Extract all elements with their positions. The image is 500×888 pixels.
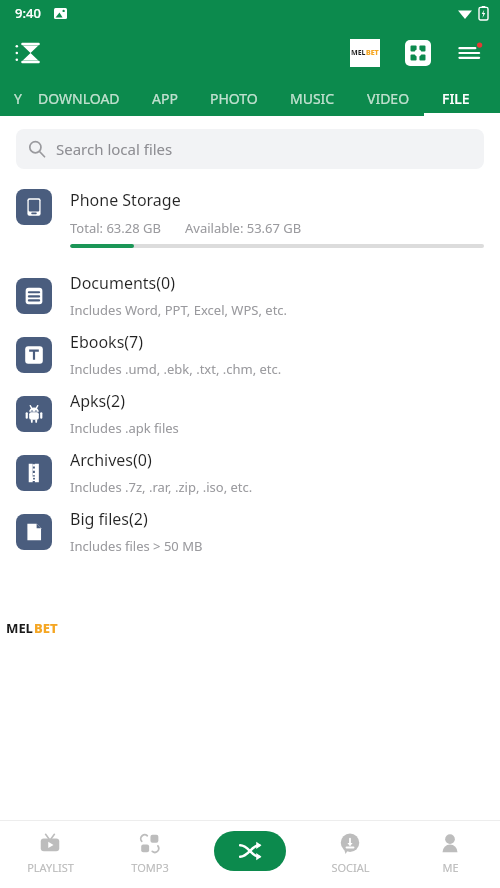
staticText: PHOTO — [210, 89, 258, 108]
button[interactable]: Apks(2) — [0, 384, 500, 443]
button[interactable]: Transfer files — [214, 831, 286, 871]
staticText: MUSIC — [290, 89, 335, 108]
staticText: Includes files > 50 MB — [70, 537, 203, 555]
button[interactable]: DOWNLOAD — [22, 80, 136, 116]
button[interactable]: Phone Storage — [0, 187, 500, 250]
staticText: Ebooks(7) — [70, 331, 144, 353]
button[interactable]: Documents(0) — [0, 266, 500, 325]
staticText: APP — [152, 89, 178, 108]
staticText: VIDEO — [367, 89, 410, 108]
button[interactable]: Transfer — [398, 33, 438, 73]
button[interactable]: Melbet banner — [6, 619, 58, 637]
staticText: Total: 63.28 GB — [70, 219, 161, 237]
button[interactable]: PLAYLIST — [0, 820, 100, 888]
button[interactable]: FILE — [426, 80, 488, 116]
staticText: Includes .7z, .rar, .zip, .iso, etc. — [70, 478, 253, 496]
button[interactable]: Big files(2) — [0, 502, 500, 561]
staticText: FILE — [442, 89, 470, 108]
button[interactable]: MUSIC — [274, 80, 351, 116]
button[interactable]: TOMP3 — [100, 820, 200, 888]
staticText: BET — [366, 48, 379, 58]
staticText: Apks(2) — [70, 390, 126, 412]
staticText: ME — [442, 860, 459, 875]
staticText: Includes Word, PPT, Excel, WPS, etc. — [70, 301, 288, 319]
staticText: Documents(0) — [70, 272, 175, 294]
staticText: PLAYLIST — [27, 860, 74, 875]
button[interactable]: Y — [0, 80, 22, 116]
staticText: MEL — [351, 48, 366, 58]
button[interactable]: APP — [136, 80, 194, 116]
staticText: 9:40 — [15, 4, 41, 22]
staticText: Includes .umd, .ebk, .txt, .chm, etc. — [70, 360, 282, 378]
staticText: DOWNLOAD — [38, 89, 120, 108]
staticText: Available: 53.67 GB — [185, 219, 302, 237]
button[interactable]: Melbet ad — [350, 39, 380, 67]
staticText: BET — [34, 619, 58, 637]
button[interactable]: Archives(0) — [0, 443, 500, 502]
button[interactable]: ME — [400, 820, 500, 888]
button[interactable]: SOCIAL — [300, 820, 400, 888]
button[interactable]: Search local files — [16, 129, 484, 169]
staticText: SOCIAL — [331, 860, 370, 875]
button[interactable]: Ebooks(7) — [0, 325, 500, 384]
staticText: MEL — [6, 619, 34, 637]
staticText: Y — [14, 89, 22, 108]
button[interactable]: App logo — [8, 33, 48, 73]
staticText: Archives(0) — [70, 449, 152, 471]
button[interactable]: Menu — [450, 33, 490, 73]
staticText: Phone Storage — [70, 189, 181, 211]
staticText: Search local files — [56, 139, 173, 159]
button[interactable]: PHOTO — [194, 80, 274, 116]
staticText: Big files(2) — [70, 508, 148, 530]
staticText: Includes .apk files — [70, 419, 179, 437]
staticText: TOMP3 — [131, 860, 169, 875]
button[interactable]: VIDEO — [351, 80, 426, 116]
